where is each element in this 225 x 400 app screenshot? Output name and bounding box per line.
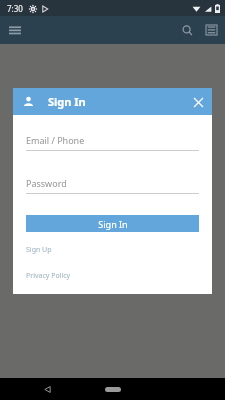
button[interactable]: Sign In (26, 215, 199, 232)
button[interactable]: Sign Up (26, 245, 52, 255)
button[interactable]: List view (199, 18, 223, 42)
button[interactable]: Home (102, 382, 124, 396)
button[interactable]: Privacy Policy (26, 271, 71, 281)
button[interactable]: Search (175, 18, 199, 42)
button[interactable]: Menu (3, 18, 27, 42)
button[interactable]: Close (188, 92, 208, 112)
staticText: Sign Up (26, 245, 52, 255)
staticText: Password (26, 177, 67, 189)
staticText: 7:30 (7, 3, 23, 14)
staticText: Sign In (48, 94, 86, 109)
staticText: Privacy Policy (26, 271, 71, 281)
button[interactable]: Back (38, 380, 56, 398)
staticText: Email / Phone (26, 134, 85, 146)
staticText: Sign In (98, 218, 128, 230)
